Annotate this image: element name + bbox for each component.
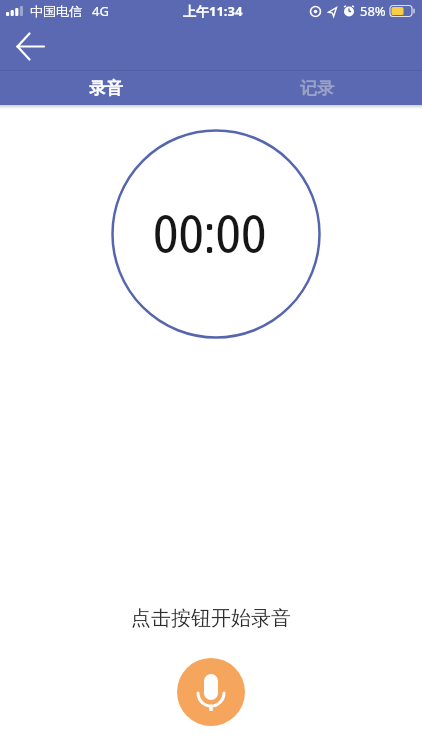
staticText: 上午11:34 — [183, 2, 243, 20]
staticText: 中国电信 — [30, 3, 82, 19]
staticText: 00:00 — [153, 203, 267, 265]
button[interactable] — [177, 658, 245, 726]
staticText: 点击按钮开始录音 — [131, 606, 291, 631]
staticText: 记录 — [300, 78, 334, 99]
button[interactable] — [8, 24, 52, 68]
button[interactable]: 记录 — [211, 71, 422, 105]
staticText: 58% — [360, 2, 386, 20]
staticText: 录音 — [89, 78, 123, 99]
button[interactable]: 录音 — [0, 71, 211, 105]
staticText: 4G — [92, 2, 109, 20]
